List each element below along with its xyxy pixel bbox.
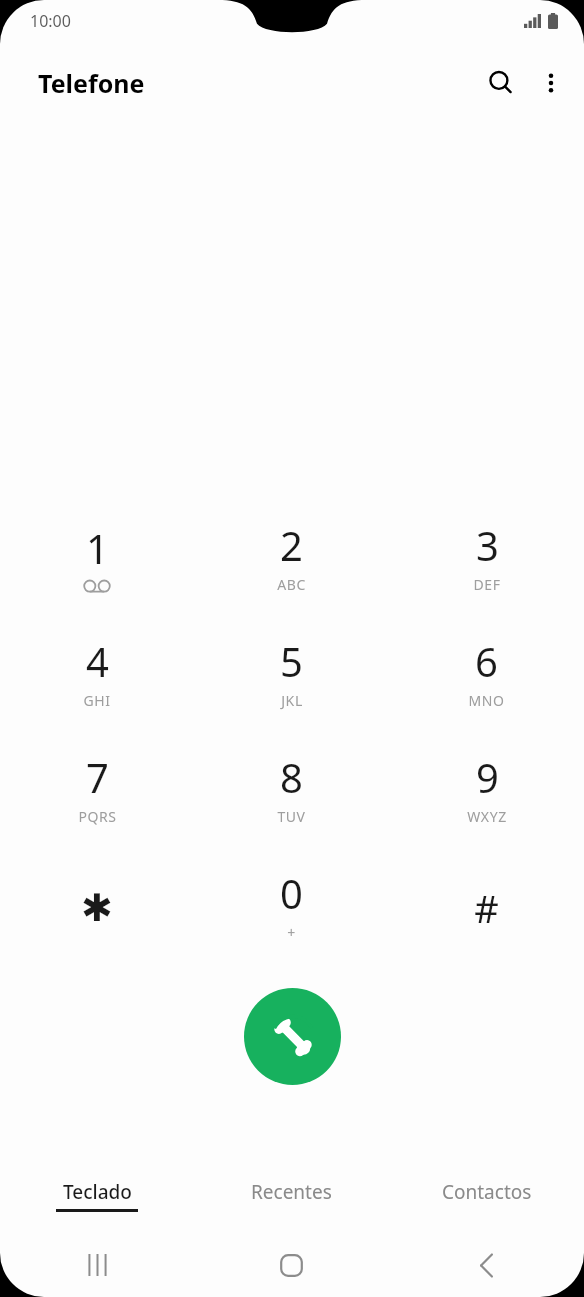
staticText: Recentes — [251, 1179, 332, 1205]
staticText: ABC — [277, 575, 306, 594]
button[interactable]: 6 — [389, 618, 584, 734]
button[interactable]: 3 — [389, 502, 584, 618]
button[interactable]: 9 — [389, 734, 584, 850]
button[interactable]: Recent apps — [0, 1233, 194, 1297]
button[interactable]: More options — [526, 58, 576, 108]
button[interactable]: Teclado — [0, 1157, 194, 1233]
button[interactable]: Contactos — [389, 1157, 584, 1233]
staticText: WXYZ — [467, 807, 507, 826]
button[interactable]: # — [389, 850, 584, 966]
staticText: # — [474, 882, 499, 934]
button[interactable]: 0 — [194, 850, 389, 966]
staticText: 9 — [476, 750, 499, 804]
staticText: Telefone — [38, 66, 145, 100]
staticText: Contactos — [442, 1179, 532, 1205]
button[interactable]: 7 — [0, 734, 194, 850]
staticText: PQRS — [78, 807, 117, 826]
staticText: TUV — [277, 807, 306, 826]
staticText: + — [287, 923, 296, 942]
staticText: 1 — [86, 521, 109, 575]
staticText: 0 — [280, 866, 303, 920]
button[interactable]: Back — [389, 1233, 584, 1297]
staticText: JKL — [281, 691, 303, 710]
staticText: 3 — [476, 518, 499, 572]
staticText: Teclado — [63, 1179, 132, 1205]
button[interactable]: 5 — [194, 618, 389, 734]
button[interactable]: 8 — [194, 734, 389, 850]
button[interactable]: Search — [476, 58, 526, 108]
staticText: 7 — [86, 750, 109, 804]
staticText: 6 — [475, 634, 498, 688]
staticText: 4 — [86, 634, 109, 688]
staticText: GHI — [83, 691, 111, 710]
button[interactable]: ✱ — [0, 850, 194, 966]
staticText: MNO — [468, 691, 505, 710]
staticText: 10:00 — [30, 10, 71, 32]
staticText: 8 — [280, 750, 303, 804]
staticText: DEF — [473, 575, 501, 594]
button[interactable]: 4 — [0, 618, 194, 734]
button[interactable]: Call — [244, 988, 341, 1085]
staticText: 5 — [280, 634, 303, 688]
button[interactable]: 1 — [0, 502, 194, 618]
button[interactable]: 2 — [194, 502, 389, 618]
button[interactable]: Recentes — [194, 1157, 389, 1233]
staticText: ✱ — [81, 886, 113, 930]
button[interactable]: Home — [194, 1233, 389, 1297]
staticText: 2 — [280, 518, 303, 572]
